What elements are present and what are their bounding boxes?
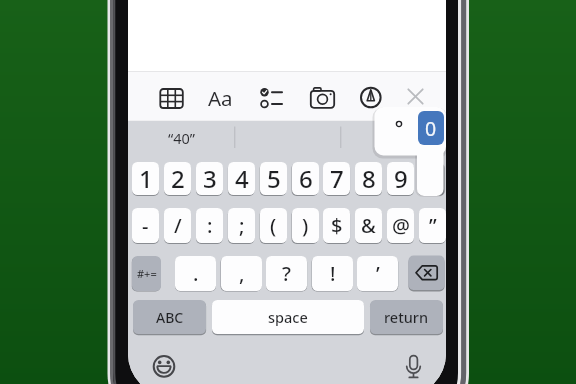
- staticText: &: [361, 212, 376, 239]
- staticText: @: [392, 212, 410, 239]
- staticText: 3: [203, 162, 217, 195]
- staticText: -: [142, 212, 149, 239]
- button[interactable]: 6: [292, 162, 319, 195]
- button[interactable]: 8: [355, 162, 382, 195]
- staticText: 0: [425, 115, 437, 142]
- staticText: space: [268, 307, 308, 327]
- button[interactable]: ’: [357, 256, 398, 291]
- button[interactable]: 7: [323, 162, 350, 195]
- staticText: (: [270, 212, 277, 239]
- button[interactable]: ;: [228, 208, 255, 243]
- button[interactable]: ?: [266, 256, 307, 291]
- staticText: $: [331, 212, 343, 239]
- staticText: 6: [299, 162, 313, 195]
- staticText: return: [384, 307, 429, 327]
- button[interactable]: $: [323, 208, 350, 243]
- staticText: 5: [267, 162, 281, 195]
- staticText: !: [330, 260, 336, 287]
- staticText: ;: [239, 212, 245, 239]
- button[interactable]: “40”: [128, 120, 234, 156]
- button[interactable]: ABC: [133, 300, 206, 334]
- button[interactable]: 2: [164, 162, 191, 195]
- button[interactable]: 4: [228, 162, 255, 195]
- staticText: ,: [239, 260, 245, 287]
- button[interactable]: [304, 81, 340, 115]
- button[interactable]: /: [164, 208, 191, 243]
- button[interactable]: [146, 348, 182, 384]
- staticText: #+=: [137, 266, 157, 281]
- button[interactable]: ): [292, 208, 319, 243]
- button[interactable]: [253, 81, 289, 115]
- button[interactable]: #+=: [132, 256, 161, 291]
- button[interactable]: [340, 121, 446, 157]
- button[interactable]: [154, 81, 190, 115]
- button[interactable]: [408, 255, 444, 290]
- staticText: .: [193, 260, 199, 287]
- staticText: 2: [171, 162, 185, 195]
- staticText: /: [174, 212, 182, 239]
- button[interactable]: 5: [260, 162, 287, 195]
- button[interactable]: @: [387, 208, 414, 243]
- button[interactable]: return: [370, 300, 443, 334]
- button[interactable]: (: [260, 208, 287, 243]
- button[interactable]: .: [175, 256, 216, 291]
- staticText: ’: [376, 260, 380, 287]
- button[interactable]: ”: [419, 208, 446, 243]
- button[interactable]: 1: [132, 162, 159, 195]
- staticText: ): [302, 212, 309, 239]
- button[interactable]: :: [196, 208, 223, 243]
- staticText: :: [207, 212, 213, 239]
- staticText: Aa: [208, 84, 233, 112]
- button[interactable]: space: [212, 300, 364, 334]
- button[interactable]: ,: [221, 256, 262, 291]
- staticText: ?: [282, 260, 291, 287]
- button[interactable]: [395, 348, 431, 384]
- button[interactable]: 0: [418, 111, 444, 145]
- staticText: 4: [235, 162, 249, 195]
- staticText: ABC: [156, 308, 184, 327]
- button[interactable]: [353, 81, 389, 115]
- staticText: 7: [330, 162, 344, 195]
- button[interactable]: [398, 80, 433, 113]
- button[interactable]: &: [355, 208, 382, 243]
- button[interactable]: Aa: [202, 81, 238, 115]
- button[interactable]: -: [132, 208, 159, 243]
- staticText: ”: [429, 212, 437, 239]
- staticText: 1: [139, 162, 153, 195]
- staticText: 9: [394, 162, 408, 195]
- button[interactable]: 9: [387, 162, 414, 195]
- staticText: 8: [362, 162, 376, 195]
- button[interactable]: !: [312, 256, 353, 291]
- button[interactable]: 3: [196, 162, 223, 195]
- staticText: “40”: [168, 128, 195, 148]
